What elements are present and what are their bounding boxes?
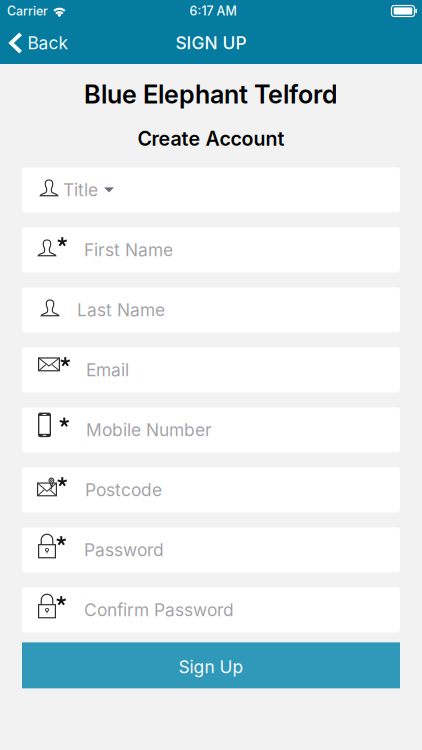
staticText: Email — [86, 359, 129, 380]
button[interactable]: Mobile Number — [22, 407, 400, 452]
staticText: Postcode — [85, 479, 162, 500]
button[interactable]: Password — [22, 527, 400, 572]
staticText: Last Name — [77, 299, 165, 320]
button[interactable]: First Name — [22, 227, 400, 272]
staticText: Password — [84, 539, 164, 560]
staticText: Title — [63, 179, 98, 200]
staticText: Create Account — [137, 127, 284, 150]
staticText: Blue Elephant Telford — [84, 79, 338, 110]
button[interactable]: Back — [0, 27, 79, 59]
staticText: 6:17 AM — [189, 3, 236, 18]
staticText: First Name — [84, 239, 173, 260]
staticText: Confirm Password — [84, 599, 234, 620]
staticText: Mobile Number — [86, 419, 212, 440]
staticText: Carrier — [7, 3, 48, 18]
staticText: Sign Up — [178, 656, 243, 677]
button[interactable]: Title — [22, 167, 400, 212]
staticText: Back — [28, 32, 69, 53]
button[interactable]: Email — [22, 347, 400, 392]
button[interactable]: Confirm Password — [22, 587, 400, 632]
button[interactable]: Postcode — [22, 467, 400, 512]
button[interactable]: Last Name — [22, 287, 400, 332]
staticText: SIGN UP — [175, 32, 246, 53]
button[interactable]: Sign Up — [22, 642, 400, 688]
